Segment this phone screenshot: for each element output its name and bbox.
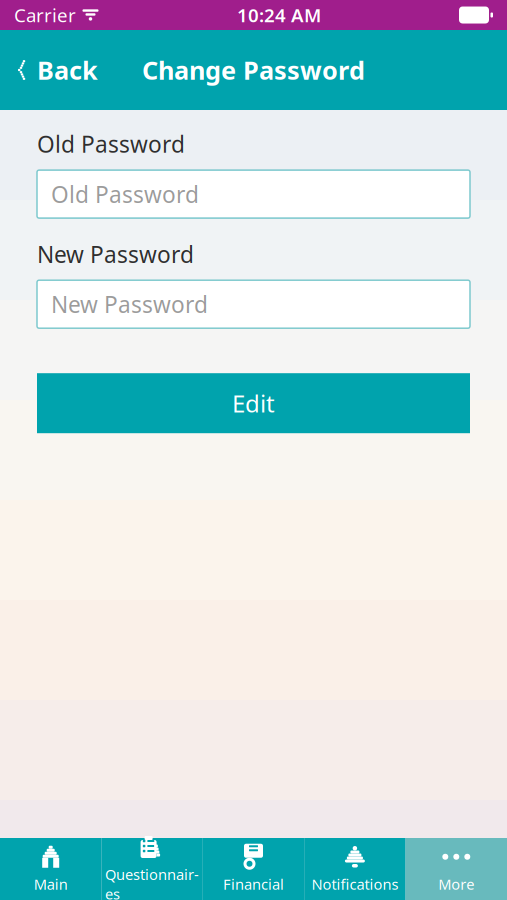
staticText: Old Password [37,129,185,159]
button[interactable]: Questionnaires [101,838,203,900]
button[interactable]: Notifications [304,838,406,900]
staticText: Notifications [311,874,398,894]
staticText: Edit [232,387,275,419]
staticText: Old Password [51,179,199,209]
staticText: Questionnaires [105,864,199,900]
button[interactable]: Financial [203,838,304,900]
staticText: Financial [223,874,284,894]
button[interactable]: Back [0,39,116,101]
staticText: More [438,874,474,894]
staticText: Main [34,874,68,894]
button[interactable]: Main [0,838,101,900]
button[interactable]: More [406,838,507,900]
staticText: New Password [51,289,208,319]
staticText: 10:24 AM [237,3,321,27]
staticText: New Password [37,239,194,269]
button[interactable]: Edit [37,373,470,433]
staticText: Carrier [14,3,76,27]
staticText: Change Password [142,53,365,87]
staticText: Back [37,53,98,87]
